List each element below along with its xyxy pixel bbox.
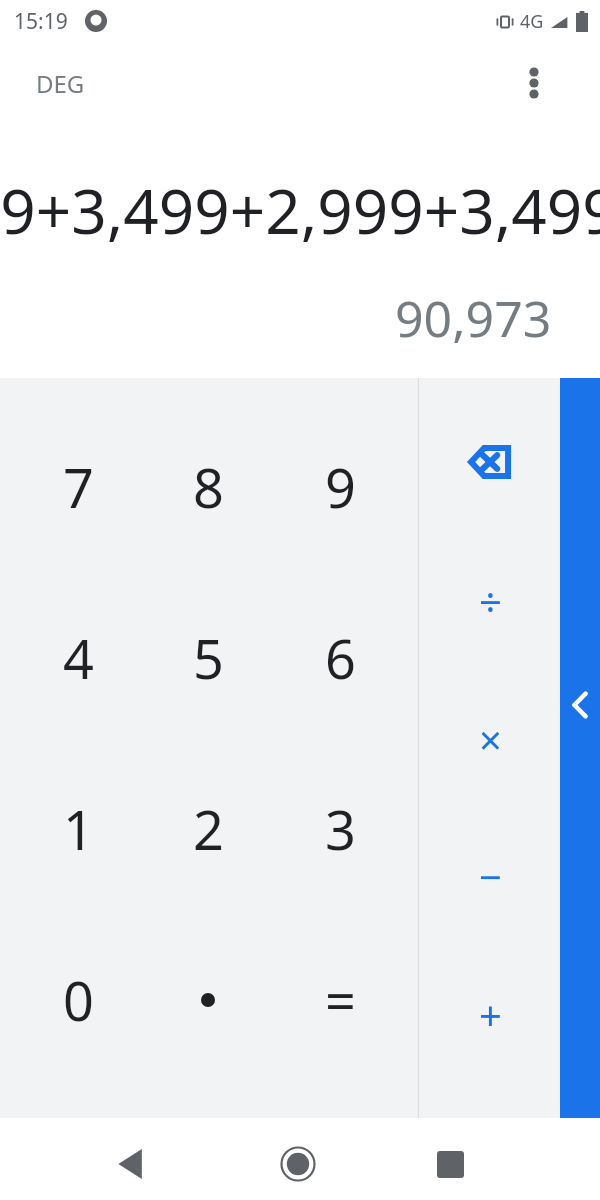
staticText: ÷ (479, 574, 502, 628)
staticText: 5 (193, 621, 224, 695)
staticText: − (479, 849, 502, 903)
staticText: 1 (63, 792, 94, 866)
button[interactable]: × (448, 693, 532, 785)
button[interactable]: 1 (12, 767, 144, 891)
button[interactable]: 7 (12, 425, 144, 549)
staticText: 8 (193, 450, 224, 524)
button[interactable]: Open advanced pad (560, 378, 600, 1118)
button[interactable]: DEG (22, 57, 99, 110)
button[interactable]: = (274, 938, 406, 1062)
button[interactable]: 0 (12, 938, 144, 1062)
button[interactable]: − (448, 830, 532, 922)
button[interactable]: 8 (142, 425, 274, 549)
button[interactable]: 2 (142, 767, 274, 891)
staticText: 4 (63, 621, 94, 695)
staticText: 9 (325, 450, 356, 524)
staticText: DEG (36, 67, 85, 100)
staticText: = (325, 963, 356, 1037)
staticText: 90,973 (395, 284, 552, 352)
button[interactable]: Back (100, 1134, 160, 1194)
button[interactable]: ÷ (448, 555, 532, 647)
staticText: 4G (520, 9, 544, 34)
button[interactable]: Home (268, 1134, 328, 1194)
button[interactable]: More options (512, 61, 556, 105)
button[interactable]: 5 (142, 596, 274, 720)
button[interactable]: 3 (274, 767, 406, 891)
staticText: + (479, 987, 502, 1041)
button[interactable] (142, 938, 274, 1062)
button[interactable]: Recent apps (420, 1134, 480, 1194)
button[interactable]: + (448, 968, 532, 1060)
staticText: 9+3,499+2,999+3,499 (0, 168, 600, 252)
button[interactable]: Backspace (448, 416, 532, 508)
button[interactable]: 9 (274, 425, 406, 549)
staticText: × (479, 712, 502, 766)
staticText: 7 (63, 450, 94, 524)
staticText: 3 (325, 792, 356, 866)
staticText: 6 (325, 621, 356, 695)
staticText: 15:19 (14, 7, 68, 36)
staticText: 0 (63, 963, 94, 1037)
button[interactable]: 4 (12, 596, 144, 720)
staticText: 2 (193, 792, 224, 866)
button[interactable]: 6 (274, 596, 406, 720)
